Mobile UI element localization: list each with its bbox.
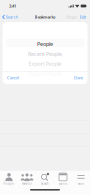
button[interactable]: People bbox=[0, 170, 18, 186]
staticText: Search bbox=[41, 182, 49, 185]
staticText: People bbox=[37, 40, 53, 47]
button[interactable]: More bbox=[72, 170, 90, 186]
staticText: Bookmarks bbox=[34, 14, 55, 20]
staticText: Cancel bbox=[7, 75, 19, 80]
staticText: Done bbox=[74, 75, 83, 80]
staticText: Recent People bbox=[28, 50, 62, 57]
button[interactable]: Cancel bbox=[4, 72, 21, 84]
staticText: People bbox=[3, 182, 14, 185]
button[interactable]: Events bbox=[54, 170, 72, 186]
staticText: Families bbox=[22, 182, 32, 185]
staticText: More bbox=[77, 182, 84, 185]
button[interactable]: Edit bbox=[77, 12, 90, 22]
staticText: Edit bbox=[80, 14, 86, 20]
button[interactable]: Families bbox=[18, 170, 36, 186]
staticText: Export People bbox=[28, 60, 61, 67]
staticText: Events bbox=[59, 182, 67, 185]
staticText: 3:41 bbox=[9, 3, 16, 9]
button[interactable]: Search bbox=[36, 170, 54, 186]
button[interactable]: People bbox=[66, 12, 77, 22]
button[interactable]: Search bbox=[0, 12, 18, 22]
staticText: Import People bbox=[28, 70, 62, 77]
button[interactable]: Done bbox=[71, 72, 85, 84]
staticText: People bbox=[66, 14, 77, 20]
staticText: Search bbox=[6, 14, 18, 20]
